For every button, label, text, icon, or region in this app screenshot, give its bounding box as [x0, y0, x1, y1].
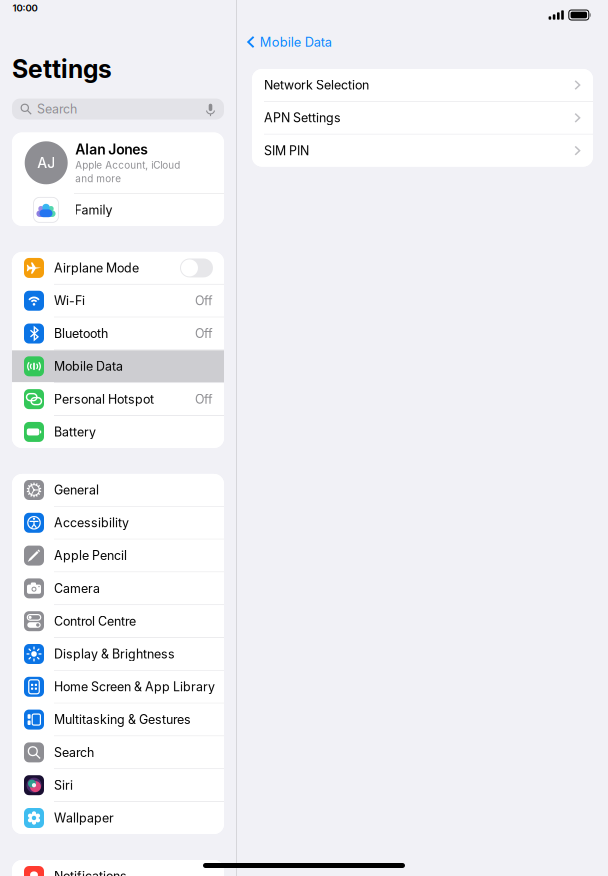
button[interactable]: General	[12, 474, 224, 506]
staticText: Control Centre	[54, 614, 136, 629]
staticText: Apple Pencil	[54, 548, 127, 563]
staticText: Off	[195, 326, 213, 341]
staticText: Siri	[54, 778, 73, 793]
staticText: Family	[74, 202, 112, 217]
staticText: Bluetooth	[54, 326, 108, 341]
button[interactable]: Display & Brightness	[12, 638, 224, 670]
button[interactable]: Family	[12, 194, 224, 226]
button[interactable]: Mobile Data	[12, 350, 224, 382]
button[interactable]: Siri	[12, 769, 224, 801]
button[interactable]: APN Settings	[252, 102, 593, 134]
staticText: Network Selection	[264, 77, 369, 92]
staticText: Apple Account, iCloud	[75, 159, 180, 171]
staticText: Home Screen & App Library	[54, 679, 215, 694]
staticText: Mobile Data	[54, 359, 123, 374]
button[interactable]: Search	[12, 736, 224, 768]
button[interactable]: Multitasking & Gestures	[12, 704, 224, 736]
staticText: Alan Jones	[75, 141, 148, 158]
button[interactable]: Mobile Data	[237, 25, 608, 55]
button[interactable]: Personal Hotspot	[12, 383, 224, 415]
staticText: Off	[195, 293, 213, 308]
staticText: Search	[54, 745, 94, 760]
button[interactable]: Accessibility	[12, 507, 224, 539]
staticText: Settings	[12, 54, 112, 84]
button[interactable]: Bluetooth	[12, 317, 224, 349]
staticText: Camera	[54, 581, 100, 596]
staticText: Personal Hotspot	[54, 392, 154, 407]
staticText: Mobile Data	[260, 34, 332, 50]
button[interactable]: Apple Pencil	[12, 540, 224, 572]
staticText: APN Settings	[264, 110, 341, 125]
button[interactable]: Network Selection	[252, 69, 593, 101]
staticText: Off	[195, 392, 213, 407]
button[interactable]: Wallpaper	[12, 802, 224, 834]
button[interactable]: SIM PIN	[252, 135, 593, 167]
staticText: Notifications	[54, 868, 127, 876]
staticText: General	[54, 482, 99, 497]
staticText: Search	[37, 101, 77, 116]
button[interactable]: Control Centre	[12, 605, 224, 637]
button[interactable]: Notifications	[12, 860, 224, 876]
staticText: Battery	[54, 424, 96, 439]
staticText: Airplane Mode	[54, 260, 139, 275]
staticText: Wi-Fi	[54, 293, 85, 308]
button[interactable]: Battery	[12, 416, 224, 448]
staticText: AJ	[37, 154, 55, 171]
staticText: Multitasking & Gestures	[54, 712, 191, 727]
button[interactable]: Camera	[12, 572, 224, 604]
staticText: Accessibility	[54, 515, 129, 530]
staticText: and more	[75, 173, 121, 185]
staticText: 10:00	[12, 2, 37, 14]
button[interactable]: AJ	[12, 132, 224, 193]
staticText: SIM PIN	[264, 143, 309, 158]
staticText: Wallpaper	[54, 810, 114, 825]
button[interactable]: Wi-Fi	[12, 285, 224, 317]
button[interactable]: Airplane Mode	[12, 252, 224, 284]
staticText: Display & Brightness	[54, 646, 175, 661]
button[interactable]: Home Screen & App Library	[12, 671, 224, 703]
